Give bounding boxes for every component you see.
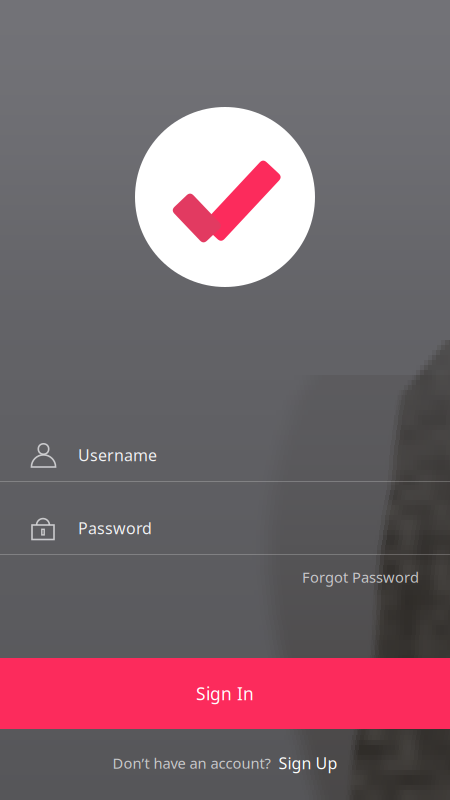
button[interactable]: Forgot Password	[0, 557, 450, 597]
staticText: Password	[78, 517, 152, 539]
staticText: Sign In	[196, 682, 254, 705]
button[interactable]: Username	[0, 427, 450, 483]
staticText: Forgot Password	[302, 567, 419, 587]
button[interactable]: Password	[0, 500, 450, 556]
staticText: Don’t have an account?	[112, 753, 270, 773]
button[interactable]: Sign In	[0, 658, 450, 729]
staticText: Sign Up	[278, 752, 337, 774]
button[interactable]: Sign Up	[278, 752, 337, 774]
staticText: Username	[78, 444, 157, 466]
